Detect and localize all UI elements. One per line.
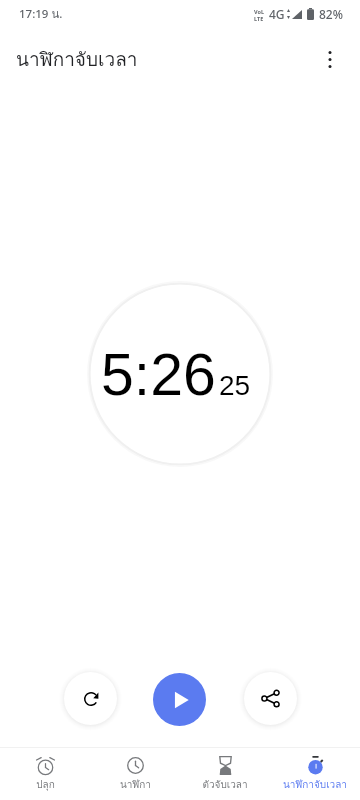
staticText: 17:19 น. bbox=[19, 5, 63, 23]
staticText: 82% bbox=[319, 6, 343, 22]
button[interactable]: ปลุก bbox=[0, 748, 90, 800]
staticText: 4G bbox=[269, 6, 285, 22]
staticText: 5:26 bbox=[101, 342, 216, 408]
button[interactable]: More options bbox=[310, 39, 350, 79]
button[interactable]: นาฬิกา bbox=[90, 748, 180, 800]
staticText: 25 bbox=[219, 370, 251, 401]
button[interactable]: ตัวจับเวลา bbox=[180, 748, 270, 800]
button[interactable]: Share bbox=[244, 672, 297, 725]
staticText: LTE bbox=[254, 15, 264, 21]
staticText: นาฬิกาจับเวลา bbox=[283, 777, 347, 793]
button[interactable]: นาฬิกาจับเวลา bbox=[270, 748, 360, 800]
button[interactable]: Start bbox=[153, 673, 206, 726]
staticText: นาฬิกา bbox=[120, 777, 151, 793]
staticText: ปลุก bbox=[36, 777, 55, 793]
staticText: นาฬิกาจับเวลา bbox=[16, 44, 138, 74]
button[interactable]: Reset bbox=[64, 672, 117, 725]
staticText: ตัวจับเวลา bbox=[202, 777, 248, 793]
staticText: VoL bbox=[254, 8, 264, 15]
